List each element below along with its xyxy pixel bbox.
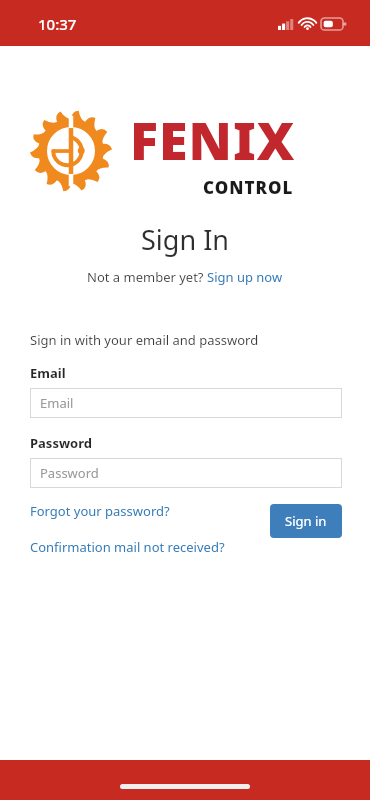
button[interactable]: Sign in: [270, 504, 342, 538]
button[interactable]: Password: [30, 458, 342, 488]
staticText: Email: [30, 364, 66, 382]
staticText: FENIX: [130, 104, 296, 175]
button[interactable]: Confirmation mail not received?: [30, 538, 225, 556]
staticText: Password: [40, 464, 99, 482]
button[interactable]: Forgot your password?: [30, 502, 170, 520]
staticText: Password: [30, 434, 92, 452]
staticText: Email: [40, 394, 74, 412]
button[interactable]: Sign up now: [207, 268, 283, 286]
staticText: Confirmation mail not received?: [30, 538, 225, 556]
staticText: 10:37: [38, 14, 77, 34]
staticText: Sign In: [0, 221, 370, 258]
staticText: Sign in with your email and password: [30, 331, 259, 349]
button[interactable]: Email: [30, 388, 342, 418]
staticText: Not a member yet?: [87, 268, 207, 286]
staticText: Forgot your password?: [30, 502, 170, 520]
staticText: Sign up now: [207, 268, 283, 286]
staticText: Sign in: [285, 512, 327, 530]
staticText: CONTROL: [203, 176, 294, 199]
